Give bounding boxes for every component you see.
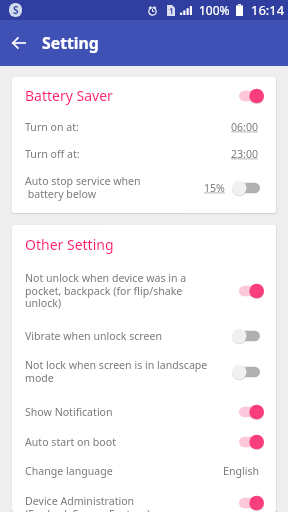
button[interactable]: Toggle on: [232, 88, 264, 104]
button[interactable]: Toggle on: [232, 495, 264, 511]
button[interactable]: Toggle off: [232, 328, 264, 344]
staticText: 15%: [204, 181, 225, 195]
button[interactable]: Auto stop service when battery below: [12, 174, 276, 201]
button[interactable]: Toggle off: [232, 364, 264, 380]
staticText: Change language: [25, 464, 223, 478]
staticText: Turn off at:: [25, 147, 231, 161]
button[interactable]: Turn on at:: [12, 120, 276, 134]
staticText: Setting: [42, 32, 99, 54]
staticText: S: [13, 3, 19, 17]
staticText: Turn on at:: [25, 120, 231, 134]
button[interactable]: Turn off at:: [12, 147, 276, 161]
staticText: Battery Saver: [25, 86, 232, 105]
button[interactable]: Back: [0, 20, 42, 66]
button[interactable]: Toggle on: [232, 434, 264, 450]
button[interactable]: Auto start on boot: [12, 434, 276, 450]
staticText: 23:00: [231, 147, 259, 161]
button[interactable]: Toggle on: [232, 283, 264, 299]
staticText: English: [223, 464, 260, 478]
button[interactable]: Battery Saver: [12, 86, 276, 105]
staticText: 100%: [199, 2, 230, 18]
staticText: Auto start on boot: [25, 435, 226, 449]
staticText: Device Administration (For Lock Screen F…: [25, 494, 226, 512]
staticText: Show Notification: [25, 405, 226, 419]
button[interactable]: Vibrate when unlock screen: [12, 328, 276, 344]
staticText: Auto stop service when battery below: [25, 174, 204, 201]
staticText: Not lock when screen is in landscape mod…: [25, 358, 226, 385]
staticText: Vibrate when unlock screen: [25, 329, 226, 343]
button[interactable]: Not unlock when device was in a pocket, …: [12, 271, 276, 310]
button[interactable]: Toggle on: [232, 404, 264, 420]
staticText: Not unlock when device was in a pocket, …: [25, 271, 226, 310]
staticText: Other Setting: [25, 235, 114, 254]
button[interactable]: Show Notification: [12, 404, 276, 420]
staticText: 16:14: [251, 1, 285, 19]
button[interactable]: Toggle off: [232, 180, 264, 196]
button[interactable]: Device Administration (For Lock Screen F…: [12, 494, 276, 512]
button[interactable]: Change language: [12, 464, 276, 478]
button[interactable]: Other Setting: [12, 235, 276, 254]
button[interactable]: Not lock when screen is in landscape mod…: [12, 358, 276, 385]
staticText: 1: [169, 5, 174, 16]
staticText: 06:00: [231, 120, 259, 134]
